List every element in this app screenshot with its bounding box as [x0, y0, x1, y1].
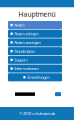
staticText: Hauptmenü [18, 10, 55, 19]
button[interactable]: Noten anzeigen [8, 38, 62, 46]
staticText: Noten anzeigen [14, 40, 40, 45]
staticText: © 2018 schulnoten.de [19, 111, 55, 116]
button[interactable]: Support [8, 56, 62, 64]
button[interactable]: Noten [8, 21, 62, 29]
staticText: Informationen [14, 66, 38, 71]
staticText: Stundenplan [14, 48, 34, 54]
button[interactable]: Noten anlegen [8, 30, 62, 38]
staticText: Noten [14, 22, 24, 28]
staticText: Einstellungen [27, 75, 49, 80]
staticText: Noten anlegen [14, 31, 38, 36]
staticText: Support [14, 57, 27, 62]
button[interactable]: Einstellungen [8, 73, 62, 81]
button[interactable]: Informationen [8, 64, 62, 73]
button[interactable]: Stundenplan [8, 47, 62, 55]
